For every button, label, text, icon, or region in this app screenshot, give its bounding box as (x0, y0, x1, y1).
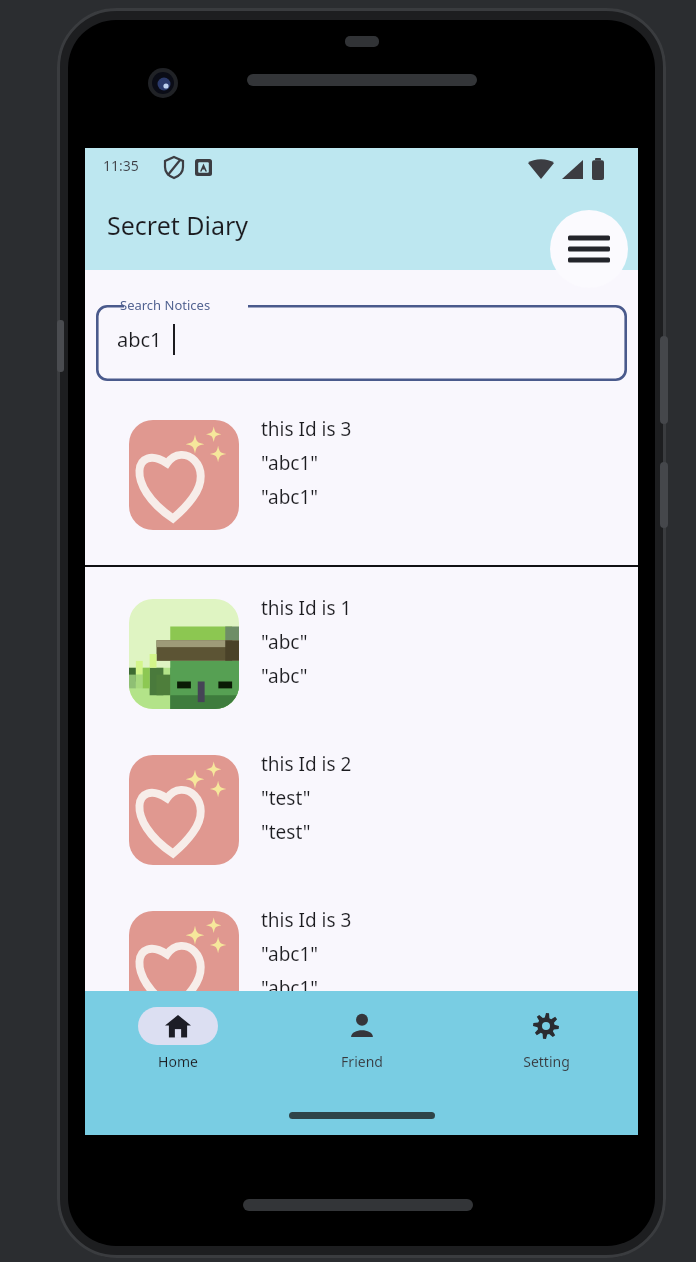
button[interactable]: this Id is 3 (85, 416, 638, 556)
staticText: "abc" (261, 663, 308, 689)
button[interactable]: Open menu (550, 210, 628, 288)
staticText: "abc1" (261, 975, 319, 1001)
staticText: "abc1" (261, 484, 319, 510)
staticText: 11:35 (103, 156, 139, 175)
staticText: this Id is 3 (261, 907, 352, 933)
staticText: "test" (261, 785, 311, 811)
staticText: "abc" (261, 629, 308, 655)
staticText: Friend (341, 1052, 383, 1071)
button[interactable]: this Id is 3 (85, 907, 638, 1047)
staticText: this Id is 3 (261, 416, 352, 442)
button[interactable]: this Id is 1 (85, 595, 638, 735)
staticText: "abc1" (261, 450, 319, 476)
staticText: Home (158, 1052, 198, 1071)
staticText: Search Notices (120, 296, 211, 314)
button[interactable]: Home (85, 991, 270, 1095)
staticText: "abc1" (261, 941, 319, 967)
button[interactable]: Setting (454, 991, 638, 1095)
staticText: abc1 (117, 326, 162, 353)
button[interactable]: this Id is 2 (85, 751, 638, 891)
staticText: this Id is 2 (261, 751, 352, 777)
staticText: this Id is 1 (261, 595, 352, 621)
button[interactable]: Friend (270, 991, 454, 1095)
staticText: "test" (261, 819, 311, 845)
staticText: Setting (523, 1052, 570, 1071)
staticText: Secret Diary (107, 208, 249, 242)
button[interactable]: Search Notices (96, 305, 627, 381)
